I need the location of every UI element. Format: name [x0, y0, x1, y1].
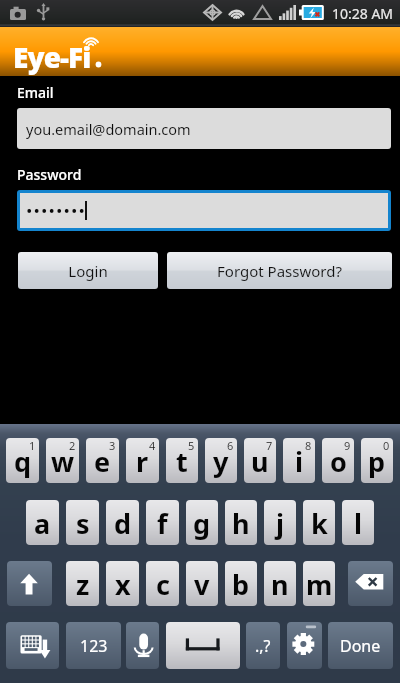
button[interactable]: z: [66, 561, 99, 606]
button[interactable]: ••••••••: [17, 190, 391, 231]
staticText: 8: [305, 438, 312, 453]
staticText: 4: [149, 438, 156, 453]
staticText: e: [94, 443, 111, 480]
button[interactable]: g: [186, 500, 218, 545]
staticText: n: [271, 566, 289, 603]
staticText: 7: [266, 438, 273, 453]
button[interactable]: Done: [328, 622, 393, 669]
button[interactable]: Voice input: [126, 622, 159, 669]
staticText: i: [295, 443, 304, 480]
staticText: p: [368, 443, 386, 480]
button[interactable]: 5: [166, 438, 198, 483]
button[interactable]: f: [146, 500, 179, 545]
staticText: s: [76, 505, 90, 542]
button[interactable]: n: [264, 561, 296, 606]
staticText: Login: [68, 261, 108, 281]
staticText: b: [232, 566, 250, 603]
button[interactable]: Space: [166, 622, 240, 669]
button[interactable]: x: [106, 561, 139, 606]
button[interactable]: Hide keyboard: [6, 622, 59, 669]
staticText: w: [51, 443, 75, 480]
button[interactable]: you.email@domain.com: [17, 108, 391, 149]
button[interactable]: 0: [361, 438, 393, 483]
button[interactable]: s: [66, 500, 99, 545]
staticText: 123: [80, 635, 108, 657]
staticText: 0: [383, 438, 390, 453]
staticText: k: [311, 505, 328, 542]
staticText: x: [115, 566, 131, 603]
staticText: q: [14, 443, 32, 480]
button[interactable]: 6: [205, 438, 237, 483]
button[interactable]: Shift: [7, 561, 52, 606]
staticText: v: [194, 566, 210, 603]
button[interactable]: 4: [126, 438, 159, 483]
button[interactable]: Backspace: [348, 561, 393, 606]
staticText: you.email@domain.com: [26, 119, 191, 139]
staticText: j: [276, 505, 285, 542]
staticText: l: [354, 505, 363, 542]
button[interactable]: 9: [322, 438, 354, 483]
staticText: Eye-Fi: [13, 38, 91, 76]
staticText: Email: [17, 83, 54, 102]
button[interactable]: k: [303, 500, 335, 545]
button[interactable]: 8: [283, 438, 315, 483]
staticText: m: [306, 566, 333, 603]
button[interactable]: v: [186, 561, 218, 606]
staticText: r: [136, 443, 149, 480]
staticText: f: [157, 505, 168, 542]
button[interactable]: b: [225, 561, 257, 606]
staticText: 2: [69, 438, 76, 453]
staticText: 9: [344, 438, 351, 453]
staticText: a: [34, 505, 51, 542]
button[interactable]: 123: [66, 622, 121, 669]
staticText: Done: [340, 635, 381, 657]
staticText: u: [251, 443, 269, 480]
staticText: 3: [109, 438, 116, 453]
button[interactable]: Settings: [287, 622, 322, 669]
button[interactable]: Login: [18, 252, 158, 289]
staticText: o: [330, 443, 347, 480]
button[interactable]: l: [342, 500, 374, 545]
staticText: t: [176, 443, 188, 480]
button[interactable]: a: [26, 500, 59, 545]
staticText: h: [232, 505, 250, 542]
staticText: Password: [17, 165, 82, 184]
staticText: d: [114, 505, 132, 542]
button[interactable]: 1: [6, 438, 39, 483]
staticText: g: [193, 505, 211, 542]
button[interactable]: .,?: [246, 622, 280, 669]
button[interactable]: h: [225, 500, 257, 545]
button[interactable]: Forgot Password?: [167, 252, 392, 289]
staticText: z: [76, 566, 90, 603]
staticText: c: [156, 566, 170, 603]
button[interactable]: j: [264, 500, 296, 545]
staticText: Forgot Password?: [217, 261, 342, 281]
staticText: 5: [188, 438, 195, 453]
button[interactable]: m: [303, 561, 335, 606]
staticText: y: [213, 443, 229, 480]
button[interactable]: d: [106, 500, 139, 545]
staticText: 10:28 AM: [332, 4, 394, 23]
staticText: ••••••••: [26, 199, 86, 222]
button[interactable]: 3: [86, 438, 119, 483]
staticText: .,?: [255, 635, 271, 657]
staticText: 1: [29, 438, 36, 453]
button[interactable]: 7: [244, 438, 276, 483]
button[interactable]: 2: [46, 438, 79, 483]
staticText: 6: [227, 438, 234, 453]
button[interactable]: c: [146, 561, 179, 606]
